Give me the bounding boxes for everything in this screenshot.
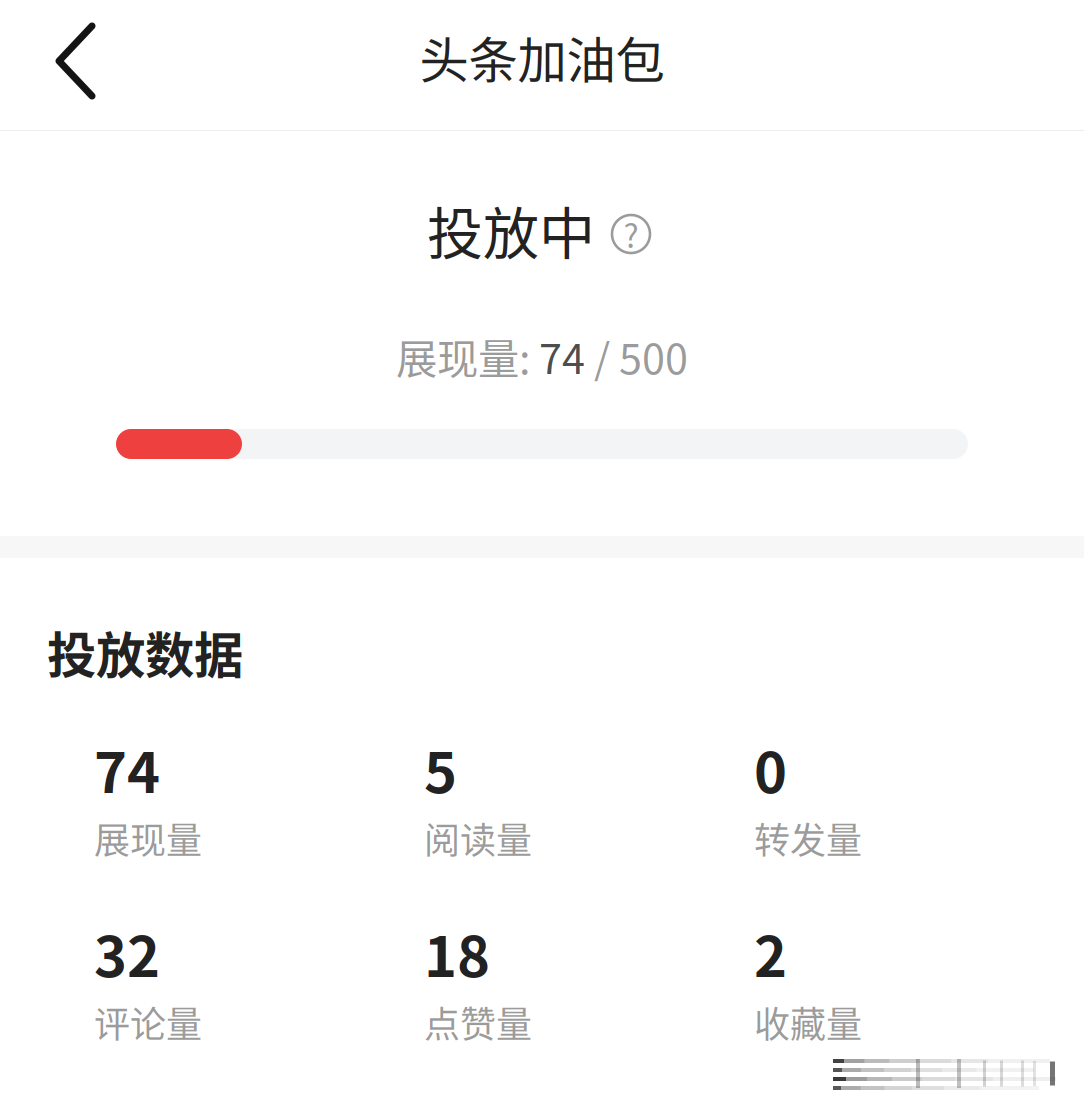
staticText: / 500 — [585, 326, 688, 386]
staticText: 收藏量 — [754, 996, 862, 1048]
staticText: 74 — [539, 326, 585, 386]
staticText: 转发量 — [754, 812, 862, 864]
staticText: 18 — [424, 912, 490, 993]
staticText: 展现量 — [94, 812, 202, 864]
staticText: 阅读量 — [424, 812, 532, 864]
staticText: 5 — [424, 728, 457, 809]
staticText: 投放中 — [427, 189, 595, 270]
staticText: 74 — [94, 728, 160, 809]
button[interactable]: Delivery status help — [612, 189, 650, 270]
staticText: 头条加油包 — [419, 21, 664, 92]
staticText: 0 — [754, 728, 787, 809]
staticText: 投放数据 — [47, 616, 243, 687]
staticText: ? — [623, 211, 638, 257]
button[interactable]: Back — [0, 0, 140, 122]
staticText: 2 — [754, 912, 787, 993]
staticText: 点赞量 — [424, 996, 532, 1048]
staticText: 评论量 — [94, 996, 202, 1048]
staticText: 32 — [94, 912, 160, 993]
staticText: 展现量: — [396, 326, 530, 386]
